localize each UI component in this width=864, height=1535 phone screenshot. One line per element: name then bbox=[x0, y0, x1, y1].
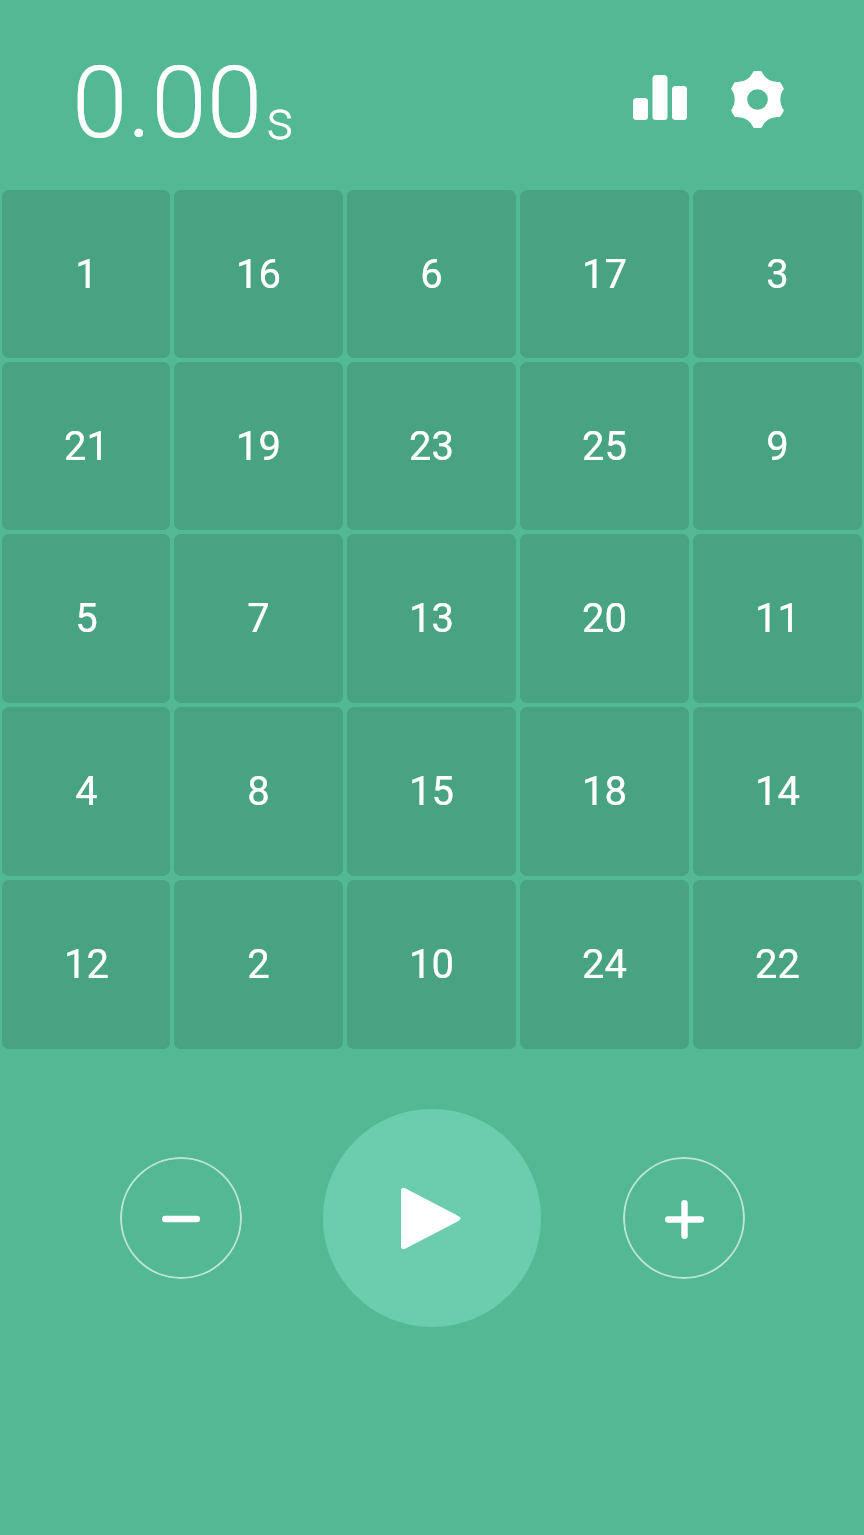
button[interactable]: Decrease grid size bbox=[120, 1157, 242, 1279]
button[interactable]: 12 bbox=[0, 878, 172, 1051]
button[interactable]: 8 bbox=[172, 705, 345, 878]
staticText: 21 bbox=[64, 423, 109, 470]
staticText: 18 bbox=[582, 768, 627, 815]
staticText: s bbox=[266, 88, 294, 152]
staticText: 6 bbox=[420, 251, 443, 298]
button[interactable]: Statistics bbox=[612, 49, 708, 145]
staticText: 9 bbox=[766, 423, 789, 470]
staticText: 3 bbox=[766, 251, 789, 298]
staticText: 0.00 bbox=[72, 44, 263, 161]
staticText: 5 bbox=[75, 595, 98, 642]
staticText: 2 bbox=[247, 941, 270, 988]
button[interactable]: 19 bbox=[172, 360, 345, 532]
button[interactable]: Start bbox=[323, 1109, 541, 1327]
staticText: 14 bbox=[755, 768, 800, 815]
button[interactable]: 7 bbox=[172, 532, 345, 705]
staticText: 4 bbox=[75, 768, 98, 815]
button[interactable]: 17 bbox=[518, 188, 691, 360]
staticText: 10 bbox=[409, 941, 454, 988]
staticText: 24 bbox=[582, 941, 627, 988]
button[interactable]: 13 bbox=[345, 532, 518, 705]
staticText: 11 bbox=[755, 595, 800, 642]
staticText: 12 bbox=[64, 941, 109, 988]
staticText: 17 bbox=[582, 251, 627, 298]
button[interactable]: 1 bbox=[0, 188, 172, 360]
button[interactable]: 22 bbox=[691, 878, 864, 1051]
button[interactable]: 21 bbox=[0, 360, 172, 532]
button[interactable]: 2 bbox=[172, 878, 345, 1051]
button[interactable]: 16 bbox=[172, 188, 345, 360]
button[interactable]: 24 bbox=[518, 878, 691, 1051]
staticText: 15 bbox=[409, 768, 454, 815]
staticText: 16 bbox=[236, 251, 281, 298]
staticText: 1 bbox=[75, 251, 98, 298]
staticText: 25 bbox=[582, 423, 627, 470]
staticText: 20 bbox=[582, 595, 627, 642]
staticText: 23 bbox=[409, 423, 454, 470]
button[interactable]: 6 bbox=[345, 188, 518, 360]
button[interactable]: 15 bbox=[345, 705, 518, 878]
button[interactable]: 18 bbox=[518, 705, 691, 878]
button[interactable]: 14 bbox=[691, 705, 864, 878]
staticText: 22 bbox=[755, 941, 800, 988]
button[interactable]: 5 bbox=[0, 532, 172, 705]
staticText: 13 bbox=[409, 595, 454, 642]
button[interactable]: 3 bbox=[691, 188, 864, 360]
staticText: 8 bbox=[247, 768, 270, 815]
staticText: 19 bbox=[236, 423, 281, 470]
button[interactable]: Increase grid size bbox=[623, 1157, 745, 1279]
button[interactable]: 23 bbox=[345, 360, 518, 532]
button[interactable]: 11 bbox=[691, 532, 864, 705]
button[interactable]: 9 bbox=[691, 360, 864, 532]
button[interactable]: 25 bbox=[518, 360, 691, 532]
button[interactable]: 10 bbox=[345, 878, 518, 1051]
button[interactable]: 4 bbox=[0, 705, 172, 878]
staticText: 7 bbox=[247, 595, 270, 642]
button[interactable]: 20 bbox=[518, 532, 691, 705]
button[interactable]: Settings bbox=[709, 51, 805, 147]
